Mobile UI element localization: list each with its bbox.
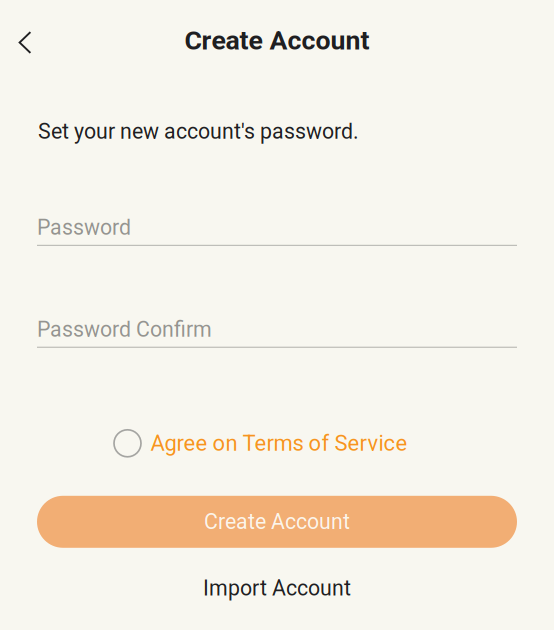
button[interactable]: Agree on Terms of Service [114, 430, 407, 457]
staticText: Create Account [184, 25, 369, 56]
staticText: Create Account [204, 509, 350, 534]
staticText: Import Account [203, 576, 351, 601]
staticText: Password Confirm [37, 317, 212, 342]
staticText: Password [37, 215, 131, 240]
button[interactable]: Import Account [203, 576, 351, 601]
staticText: Set your new account's password. [38, 119, 359, 144]
button[interactable]: Back [4, 16, 46, 64]
button[interactable]: Create Account [37, 496, 517, 548]
staticText: Agree on Terms of Service [150, 430, 407, 456]
